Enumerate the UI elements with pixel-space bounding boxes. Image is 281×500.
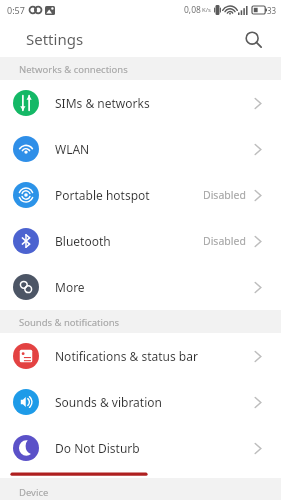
staticText: SIMs & networks [55,95,150,111]
staticText: Bluetooth [55,233,111,249]
button[interactable]: Notifications & status bar [0,333,281,379]
button[interactable]: Bluetooth [0,218,281,264]
staticText: Notifications & status bar [55,348,198,364]
staticText: K/s [202,6,211,14]
button[interactable]: Do Not Disturb [0,425,281,471]
staticText: WLAN [55,141,90,157]
staticText: Do Not Disturb [55,440,140,456]
staticText: Disabled [203,234,246,248]
staticText: Sounds & notifications [19,316,120,329]
button[interactable]: Portable hotspot [0,172,281,218]
staticText: 33 [267,5,277,16]
staticText: Settings [26,29,84,49]
button[interactable]: SIMs & networks [0,80,281,126]
staticText: Networks & connections [19,63,128,76]
staticText: Disabled [203,188,246,202]
staticText: Sounds & vibration [55,394,162,410]
staticText: Portable hotspot [55,187,150,203]
button[interactable]: More [0,264,281,310]
button[interactable]: WLAN [0,126,281,172]
staticText: Device [19,486,49,499]
staticText: 0,08 [184,4,201,16]
staticText: More [55,279,85,295]
button[interactable]: Search [239,25,267,53]
staticText: 0:57 [7,4,25,16]
button[interactable]: Sounds & vibration [0,379,281,425]
